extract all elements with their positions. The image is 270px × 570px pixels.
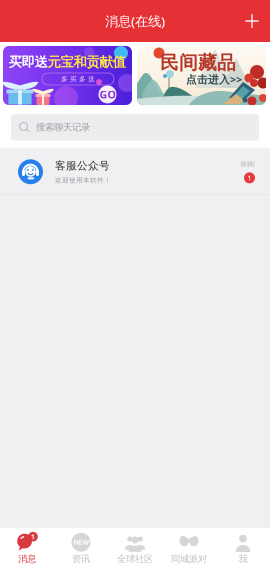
staticText: 消息 [18, 553, 36, 565]
staticText: 客服公众号 [55, 159, 110, 172]
button[interactable]: 1 [0, 527, 54, 570]
staticText: GO [99, 87, 115, 101]
staticText: 消息(在线) [105, 12, 165, 30]
staticText: 多 买 多 送 [61, 75, 95, 83]
button[interactable]: 民间藏品 [137, 46, 266, 105]
button[interactable]: 客服公众号 [0, 148, 270, 195]
staticText: 民间藏品 [160, 51, 236, 74]
staticText: NEW [73, 538, 88, 547]
staticText: 元宝和贡献值 [47, 54, 125, 70]
staticText: 刚刚 [241, 160, 255, 168]
staticText: 资讯 [72, 553, 90, 565]
staticText: 同城派对 [171, 553, 207, 565]
staticText: 搜索聊天记录 [36, 121, 90, 133]
button[interactable]: NEW [54, 527, 108, 570]
staticText: 欢迎使用本软件！ [55, 176, 111, 184]
button[interactable]: 我 [216, 527, 270, 570]
button[interactable]: 同城派对 [162, 527, 216, 570]
staticText: 买即送 [8, 54, 47, 70]
staticText: 全球社区 [117, 553, 153, 565]
button[interactable]: 搜索聊天记录 [0, 105, 270, 148]
button[interactable]: 买即送 [3, 46, 132, 105]
staticText: 我 [238, 553, 247, 565]
staticText: 点击进入>> [186, 72, 242, 86]
staticText: 1 [247, 173, 251, 182]
staticText: 1 [31, 532, 35, 541]
button[interactable]: 全球社区 [108, 527, 162, 570]
button[interactable]: New message [234, 0, 270, 42]
